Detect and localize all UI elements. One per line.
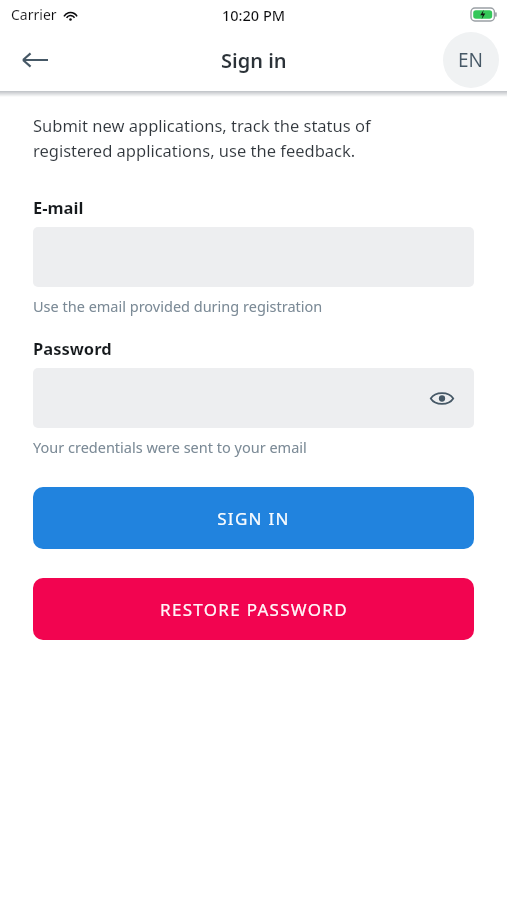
staticText: Sign in	[221, 47, 287, 74]
staticText: RESTORE PASSWORD	[160, 598, 348, 621]
button[interactable]: Back	[12, 37, 58, 83]
staticText: Carrier	[11, 5, 57, 24]
staticText: Use the email provided during registrati…	[33, 296, 323, 316]
staticText: 10:20 PM	[222, 5, 286, 25]
staticText: Your credentials were sent to your email	[33, 437, 307, 457]
staticText: EN	[458, 47, 484, 73]
staticText: SIGN IN	[217, 507, 290, 530]
staticText: Submit new applications, track the statu…	[33, 114, 371, 161]
button[interactable]: RESTORE PASSWORD	[33, 578, 474, 640]
staticText: Password	[33, 337, 112, 359]
button[interactable]: EN	[443, 32, 499, 88]
button[interactable]: SIGN IN	[33, 487, 474, 549]
button[interactable]: Show password	[33, 368, 474, 428]
button[interactable]: Show password	[422, 378, 462, 418]
staticText: E-mail	[33, 196, 84, 218]
